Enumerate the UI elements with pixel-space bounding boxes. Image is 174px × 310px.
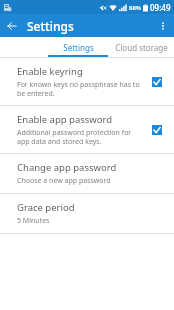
staticText: Additional password protection for app d… [17,128,132,146]
staticText: Grace period [17,201,75,214]
staticText: Cloud storage [115,42,168,53]
staticText: Enable keyring [17,65,83,78]
button[interactable]: More options [155,18,171,34]
staticText: Settings [63,42,94,53]
staticText: Enable app password [17,113,113,126]
button[interactable]: Enable keyring [0,58,174,105]
button[interactable]: Enable app password [0,106,174,153]
staticText: 09:49 [150,2,171,13]
staticText: Settings [27,18,74,34]
button[interactable]: Enable keyring [148,73,166,91]
staticText: Choose a new app password [17,176,111,186]
button[interactable]: Change app password [0,154,174,193]
staticText: For known keys no passphrase has to be e… [17,80,140,98]
staticText: 5 Minutes [17,216,50,226]
button[interactable]: Enable app password [148,121,166,139]
button[interactable]: Back [4,18,20,34]
button[interactable]: Cloud storage [108,37,174,57]
staticText: Change app password [17,161,117,174]
staticText: 88% [129,4,141,12]
button[interactable]: Grace period [0,194,174,233]
button[interactable]: Settings [48,37,108,57]
